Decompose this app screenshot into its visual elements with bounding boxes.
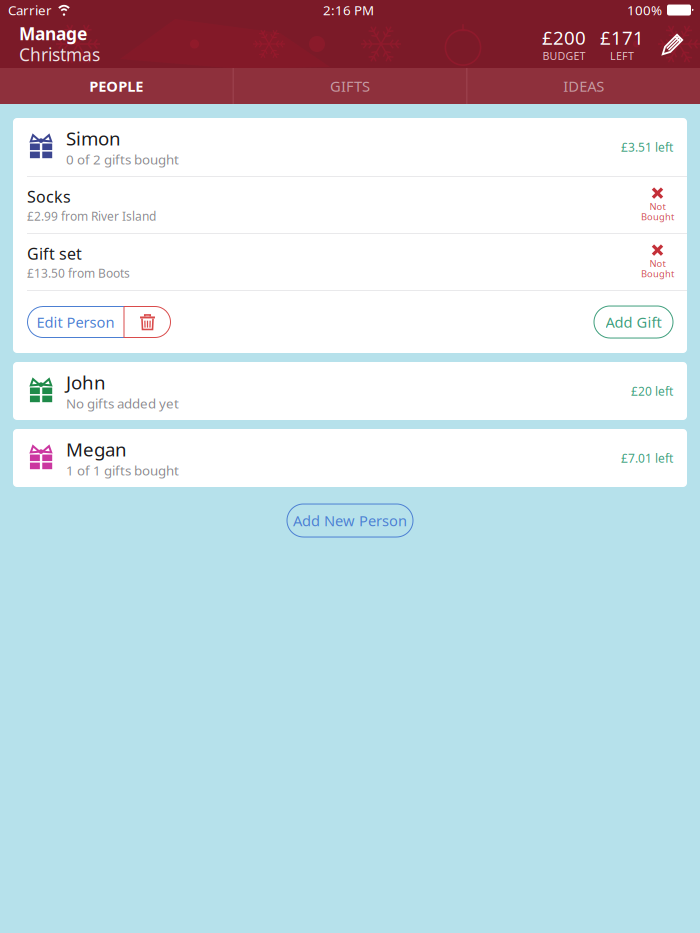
staticText: Add Gift (605, 312, 661, 332)
staticText: Gift set (27, 243, 82, 264)
button[interactable]: Add Gift (594, 306, 673, 338)
staticText: GIFTS (330, 76, 370, 96)
button[interactable]: GIFTS (234, 68, 466, 104)
button[interactable]: John (13, 362, 687, 420)
staticText: 100% (627, 1, 662, 19)
button[interactable]: IDEAS (467, 68, 700, 104)
staticText: 1 of 1 gifts bought (66, 461, 179, 479)
button[interactable]: Gift set (13, 234, 687, 290)
button[interactable]: Simon (13, 118, 687, 176)
staticText: £200 (542, 25, 586, 50)
button[interactable]: Socks (13, 177, 687, 233)
button[interactable]: Add New Person (287, 504, 413, 537)
staticText: Socks (27, 186, 71, 207)
button[interactable]: Edit budget (644, 31, 686, 57)
staticText: Not (649, 257, 665, 269)
staticText: 0 of 2 gifts bought (66, 150, 179, 168)
staticText: 2:16 PM (323, 1, 374, 19)
button[interactable]: £171 (586, 25, 644, 63)
button[interactable]: PEOPLE (0, 68, 233, 104)
staticText: LEFT (610, 49, 634, 63)
button[interactable]: Edit Person (27, 306, 124, 338)
staticText: Simon (66, 126, 121, 151)
staticText: £7.01 left (621, 450, 673, 466)
staticText: Megan (66, 437, 127, 462)
staticText: £13.50 from Boots (27, 265, 130, 281)
staticText: IDEAS (563, 76, 604, 96)
staticText: Carrier (8, 1, 52, 19)
staticText: £2.99 from River Island (27, 208, 156, 224)
staticText: Bought (641, 210, 674, 223)
button[interactable]: £200 (542, 25, 586, 63)
button[interactable]: Delete person (124, 306, 171, 338)
staticText: PEOPLE (89, 76, 143, 96)
staticText: Bought (641, 267, 674, 280)
staticText: £3.51 left (621, 139, 673, 155)
staticText: £20 left (631, 383, 673, 399)
staticText: Edit Person (36, 312, 114, 332)
button[interactable]: Megan (13, 429, 687, 487)
staticText: Add New Person (293, 511, 407, 530)
staticText: No gifts added yet (66, 394, 179, 412)
staticText: £171 (600, 25, 644, 50)
staticText: Christmas (19, 43, 100, 66)
staticText: Manage (19, 22, 87, 45)
staticText: John (66, 370, 106, 395)
staticText: BUDGET (542, 49, 585, 63)
staticText: Not (649, 200, 665, 212)
